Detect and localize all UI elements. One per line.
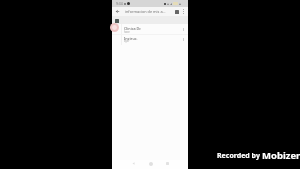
button[interactable]: App icon	[115, 19, 119, 23]
button[interactable]: Back	[113, 7, 122, 16]
button[interactable]: Grid view	[172, 7, 181, 16]
staticText: ayer	[124, 39, 130, 43]
button[interactable]: More options	[180, 7, 186, 16]
button[interactable]: Home	[147, 160, 154, 167]
button[interactable]: Record	[110, 23, 119, 32]
button[interactable]: Clinica Dr.	[112, 24, 188, 34]
staticText: Clinica Dr.	[124, 26, 142, 31]
staticText: informacion de mis archivos...	[125, 9, 167, 14]
staticText: Instruc.	[124, 36, 138, 41]
staticText: Recorded by	[217, 151, 260, 161]
staticText: Mobizen	[262, 149, 300, 162]
staticText: hace	[124, 30, 130, 34]
button[interactable]: Item options	[179, 34, 187, 44]
button[interactable]: Back	[130, 160, 137, 167]
button[interactable]: Item options	[179, 24, 187, 34]
button[interactable]: Instruc.	[112, 34, 188, 44]
button[interactable]: Recents	[164, 160, 171, 167]
staticText: 9:34	[116, 1, 123, 6]
